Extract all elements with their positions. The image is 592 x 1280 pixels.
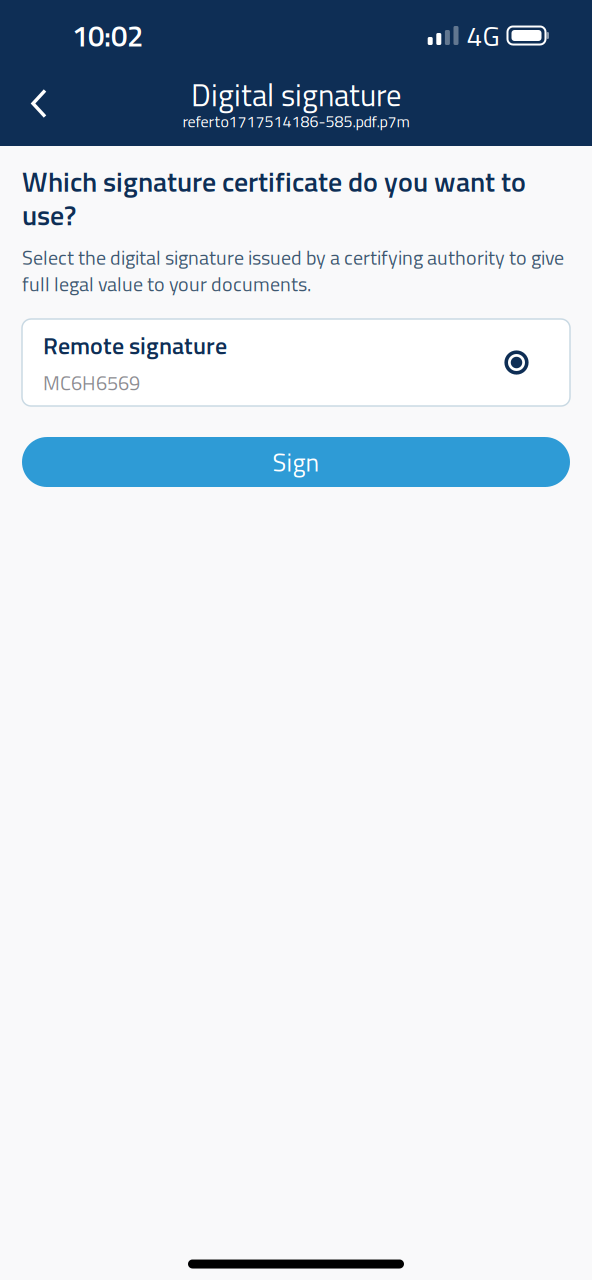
staticText: 10:02 — [72, 13, 143, 58]
staticText: MC6H6569 — [43, 368, 140, 398]
staticText: Sign — [272, 443, 319, 481]
button[interactable]: Back — [0, 77, 71, 139]
staticText: 4G — [466, 14, 499, 57]
staticText: Which signature certificate do you want … — [22, 160, 526, 236]
staticText: referto1717514186-585.pdf.p7m — [182, 109, 409, 133]
staticText: Select the digital signature issued by a… — [22, 242, 564, 299]
staticText: Remote signature — [43, 327, 227, 364]
staticText: Digital signature — [191, 71, 401, 118]
button[interactable]: Remote signature — [22, 319, 570, 406]
button[interactable]: Sign — [22, 437, 570, 487]
